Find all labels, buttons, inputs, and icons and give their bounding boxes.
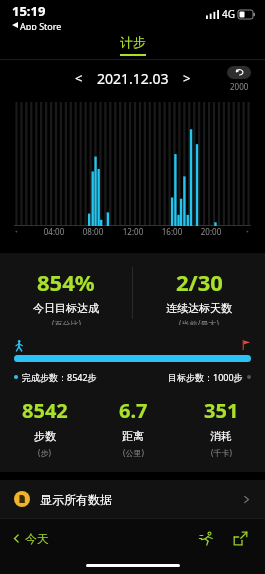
staticText: 2021.12.03 — [97, 69, 169, 88]
staticText: 4G — [222, 7, 235, 21]
staticText: 消耗 — [210, 429, 232, 443]
staticText: 04:00 — [40, 226, 68, 237]
staticText: 20:00 — [197, 226, 225, 237]
staticText: (千卡) — [211, 447, 232, 458]
staticText: 今日目标达成 — [33, 301, 99, 315]
button[interactable]: 计步 — [120, 34, 146, 56]
staticText: 854% — [37, 267, 95, 297]
staticText: 6.7 — [119, 397, 148, 424]
staticText: 距离 — [122, 429, 144, 443]
button[interactable]: 今天 — [12, 531, 49, 546]
staticText: (步) — [38, 447, 51, 458]
staticText: 15:19 — [12, 2, 46, 20]
staticText: 显示所有数据 — [40, 492, 112, 507]
staticText: 12:00 — [119, 226, 147, 237]
staticText: 8542 — [22, 397, 68, 424]
staticText: App Store — [20, 20, 62, 30]
staticText: < — [75, 69, 83, 87]
staticText: 08:00 — [79, 226, 107, 237]
button[interactable]: Goal 2000 — [227, 66, 251, 79]
staticText: 目标步数：1000步 — [168, 371, 243, 383]
staticText: 完成步数：8542步 — [22, 371, 97, 383]
staticText: 步数 — [34, 429, 56, 443]
staticText: (百分比) — [52, 318, 81, 325]
button[interactable]: Next day — [177, 68, 197, 88]
staticText: (公里) — [123, 447, 144, 458]
staticText: 计步 — [120, 34, 146, 50]
staticText: 连续达标天数 — [166, 301, 232, 315]
staticText: 2000 — [230, 81, 249, 92]
button[interactable]: Previous day — [69, 68, 89, 88]
staticText: 今天 — [25, 531, 49, 546]
button[interactable]: 显示所有数据 — [0, 480, 265, 518]
staticText: 351 — [204, 397, 239, 424]
staticText: 16:00 — [158, 226, 186, 237]
staticText: (当前/最大) — [179, 318, 219, 325]
staticText: > — [183, 69, 191, 87]
button[interactable]: Share — [227, 525, 253, 551]
staticText: 2/30 — [176, 267, 223, 297]
button[interactable]: Activity — [193, 525, 219, 551]
